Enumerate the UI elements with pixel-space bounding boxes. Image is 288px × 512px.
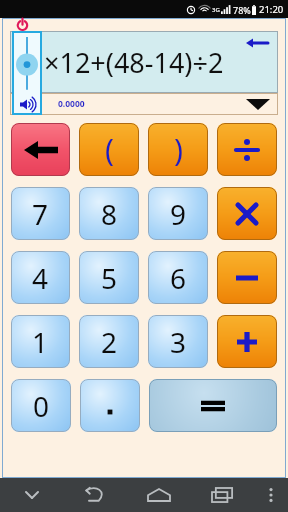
other: Volume [19,98,35,111]
staticText: 0.0000 [58,98,85,110]
button[interactable]: Home [127,478,190,512]
button[interactable]: Hide [0,478,64,512]
button[interactable]: Volume [12,31,42,115]
staticText: 9 [170,195,187,233]
staticText: ×12+(48-14)÷2 [44,44,224,81]
button[interactable]: ( [79,123,139,176]
staticText: 0 [33,387,50,425]
staticText: 21:20 [259,3,284,16]
other: Backspace [246,38,268,48]
button[interactable]: Minus [217,251,277,304]
button[interactable]: Divide [217,123,277,176]
staticText: 6 [170,259,187,297]
button[interactable]: 2 [79,315,139,368]
staticText: ( [105,129,114,170]
button[interactable]: 1 [11,315,70,368]
other: Power [16,18,29,31]
button[interactable]: More options [253,478,288,512]
staticText: 8 [101,195,118,233]
staticText: 5 [101,259,118,297]
button[interactable]: ) [148,123,208,176]
staticText: ) [174,129,183,170]
staticText: 3 [170,323,187,361]
button[interactable]: 0.0000 [10,93,278,115]
button[interactable]: 6 [148,251,208,304]
button[interactable]: Equals [149,379,277,432]
other: Expand history [246,98,270,110]
button[interactable]: Plus [217,315,277,368]
staticText: 3G [212,6,220,14]
button[interactable]: ×12+(48-14)÷2 [10,31,278,93]
button[interactable]: Recents [190,478,253,512]
staticText: 78% [233,4,251,16]
button[interactable]: 8 [79,187,139,240]
button[interactable]: Delete [11,123,70,176]
button[interactable]: 9 [148,187,208,240]
staticText: 4 [32,259,49,297]
button[interactable]: 0 [11,379,71,432]
button[interactable]: 5 [79,251,139,304]
staticText: 1 [32,323,49,361]
staticText: 7 [32,195,49,233]
button[interactable]: 4 [11,251,70,304]
button[interactable]: 3 [148,315,208,368]
button[interactable] [80,379,140,432]
staticText: 2 [101,323,118,361]
button[interactable]: Multiply [217,187,277,240]
button[interactable]: 7 [11,187,70,240]
button[interactable]: Back [64,478,127,512]
